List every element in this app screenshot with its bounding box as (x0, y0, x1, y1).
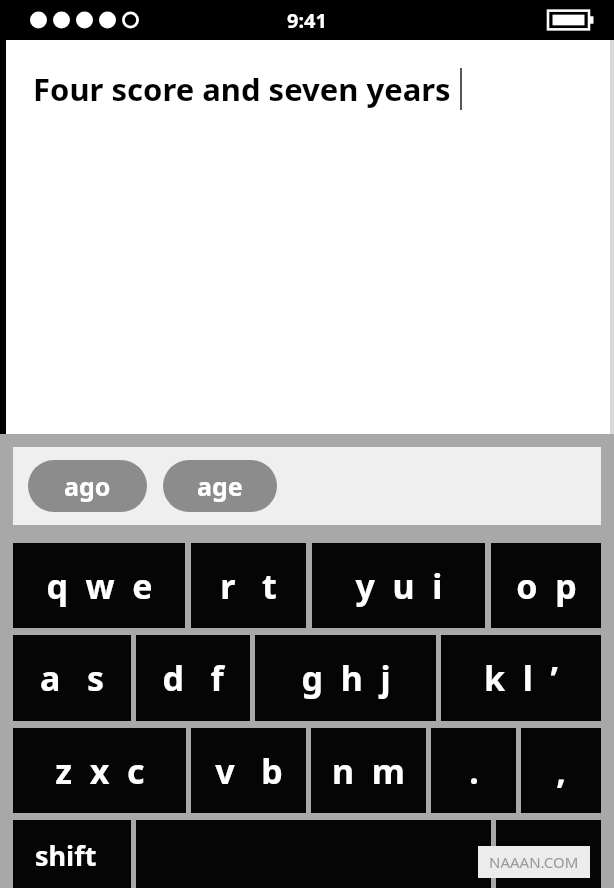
button[interactable]: ago (28, 460, 147, 512)
button[interactable]: age (163, 460, 277, 512)
staticText: r t (220, 563, 277, 609)
staticText: g h j (301, 655, 391, 701)
button[interactable]: d f (136, 635, 250, 721)
staticText: z x c (55, 748, 145, 794)
button[interactable]: z x c (13, 728, 186, 813)
button[interactable]: Return (496, 820, 601, 888)
button[interactable]: o p (491, 543, 601, 628)
button[interactable]: r t (191, 543, 306, 628)
staticText: q w e (46, 563, 153, 609)
button[interactable]: Four score and seven years (6, 40, 610, 434)
button[interactable]: g h j (255, 635, 436, 721)
staticText: shift (35, 837, 97, 874)
staticText: v b (215, 748, 283, 794)
staticText: n m (332, 748, 405, 794)
button[interactable]: , (521, 728, 601, 813)
staticText: o p (516, 563, 577, 609)
staticText: age (197, 469, 243, 503)
button[interactable]: y u i (312, 543, 485, 628)
button[interactable]: q w e (13, 543, 185, 628)
button[interactable]: v b (191, 728, 306, 813)
staticText: ago (64, 469, 111, 503)
staticText: k l ’ (484, 655, 558, 701)
button[interactable]: a s (13, 635, 131, 721)
staticText: NAAAN.COM (489, 852, 579, 872)
button[interactable]: k l ’ (441, 635, 601, 721)
staticText: . (469, 748, 479, 794)
staticText: y u i (355, 563, 443, 609)
button[interactable]: n m (311, 728, 426, 813)
staticText: 9:41 (287, 7, 327, 34)
button[interactable]: Space (136, 820, 491, 888)
staticText: , (556, 748, 566, 794)
button[interactable]: . (431, 728, 516, 813)
button[interactable]: shift (13, 820, 131, 888)
staticText: d f (162, 655, 224, 701)
staticText: Four score and seven years (33, 68, 451, 110)
staticText: a s (40, 655, 104, 701)
